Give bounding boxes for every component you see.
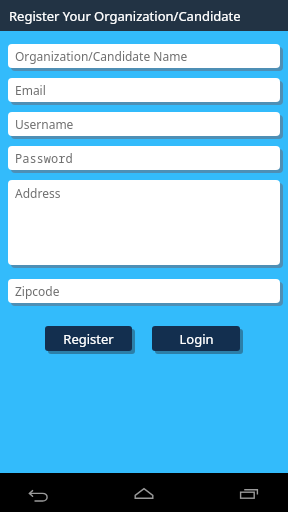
- button[interactable]: Address: [8, 180, 280, 268]
- staticText: Register Your Organization/Candidate: [9, 7, 241, 25]
- button[interactable]: Organization/Candidate Name: [8, 44, 280, 71]
- staticText: Zipcode: [15, 283, 60, 299]
- button[interactable]: Home: [127, 476, 161, 510]
- button[interactable]: Zipcode: [8, 279, 280, 306]
- button[interactable]: Login: [152, 326, 243, 354]
- staticText: Organization/Candidate Name: [15, 48, 188, 64]
- button[interactable]: Recent apps: [232, 476, 266, 510]
- staticText: Password: [15, 150, 73, 166]
- staticText: Username: [15, 116, 74, 132]
- staticText: Login: [179, 330, 214, 348]
- button[interactable]: Password: [8, 146, 280, 173]
- staticText: Email: [15, 82, 46, 98]
- button[interactable]: Register: [45, 326, 135, 354]
- button[interactable]: Username: [8, 112, 280, 139]
- staticText: Register: [63, 330, 114, 348]
- staticText: Address: [15, 185, 61, 201]
- button[interactable]: Back: [22, 476, 56, 510]
- button[interactable]: Email: [8, 78, 280, 105]
